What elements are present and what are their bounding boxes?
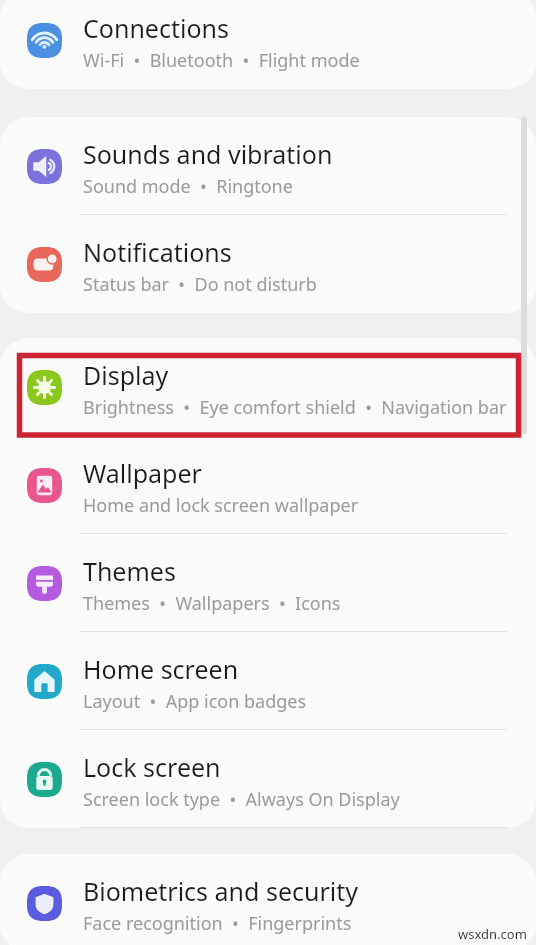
staticText: Wallpaper [83,456,202,490]
button[interactable]: Sounds and vibration. Sound mode • Ringt… [0,117,536,215]
staticText: Face recognition • Fingerprints [83,911,352,936]
button[interactable]: Lock screen. Screen lock type • Always O… [0,730,536,828]
button[interactable]: Themes. Themes • Wallpapers • Icons [0,534,536,632]
staticText: Display [83,358,169,392]
staticText: Themes [83,554,176,588]
staticText: Screen lock type • Always On Display [83,787,400,812]
staticText: Themes • Wallpapers • Icons [83,591,341,616]
staticText: Sound mode • Ringtone [83,174,293,199]
staticText: wsxdn.com [458,925,527,943]
staticText: Brightness • Eye comfort shield • Naviga… [83,395,507,420]
staticText: Home and lock screen wallpaper [83,493,359,518]
staticText: Biometrics and security [83,874,359,908]
button[interactable]: Biometrics and security. Face recognitio… [0,854,536,945]
button[interactable]: Notifications. Status bar • Do not distu… [0,215,536,313]
staticText: Sounds and vibration [83,137,333,171]
staticText: Wi-Fi • Bluetooth • Flight mode [83,48,360,73]
staticText: Layout • App icon badges [83,689,307,714]
staticText: Notifications [83,235,232,269]
button[interactable]: Display. Brightness • Eye comfort shield… [0,338,536,436]
button[interactable]: Wallpaper. Home and lock screen wallpape… [0,436,536,534]
staticText: Home screen [83,652,239,686]
staticText: Status bar • Do not disturb [83,272,317,297]
staticText: Lock screen [83,750,221,784]
staticText: Connections [83,11,229,45]
button[interactable]: Home screen. Layout • App icon badges [0,632,536,730]
button[interactable]: Connections. Wi-Fi • Bluetooth • Flight … [0,0,536,89]
